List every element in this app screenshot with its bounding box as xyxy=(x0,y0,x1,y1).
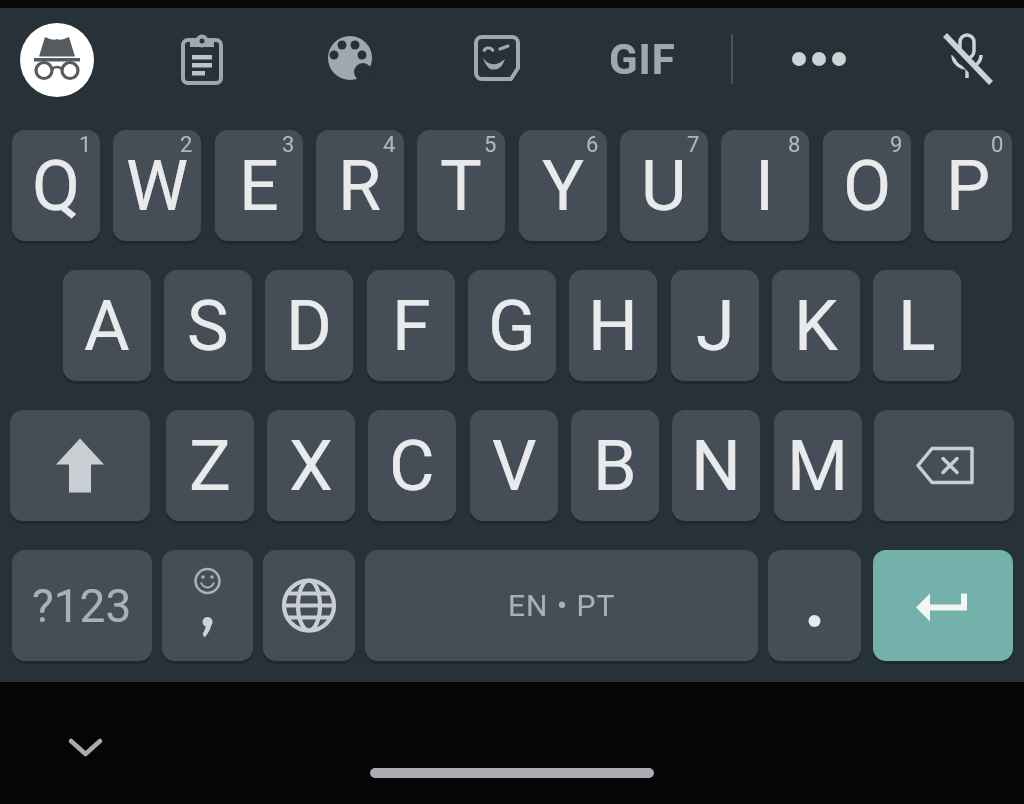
staticText: Q xyxy=(32,145,81,227)
button[interactable]: P xyxy=(924,130,1012,241)
button[interactable] xyxy=(162,550,253,661)
staticText: R xyxy=(338,145,382,227)
staticText: V xyxy=(492,425,537,507)
button[interactable]: N xyxy=(672,410,760,521)
button[interactable] xyxy=(789,49,849,69)
staticText: ?123 xyxy=(32,579,132,633)
button[interactable]: K xyxy=(772,270,860,381)
button[interactable]: A xyxy=(63,270,151,381)
button[interactable]: L xyxy=(873,270,961,381)
button[interactable]: Z xyxy=(166,410,254,521)
staticText: N xyxy=(691,425,741,507)
staticText: EN • PT xyxy=(508,588,616,623)
staticText: O xyxy=(843,145,892,227)
staticText: 3 xyxy=(282,132,295,158)
button[interactable]: B xyxy=(571,410,659,521)
staticText: A xyxy=(84,285,130,367)
button[interactable] xyxy=(176,33,228,85)
button[interactable] xyxy=(324,32,376,84)
staticText: X xyxy=(289,425,333,507)
button[interactable] xyxy=(20,23,94,97)
staticText: 7 xyxy=(687,132,700,158)
button[interactable] xyxy=(874,410,1014,521)
staticText: C xyxy=(389,425,435,507)
staticText: M xyxy=(787,425,849,507)
staticText: 9 xyxy=(890,132,903,158)
button[interactable] xyxy=(471,32,523,84)
button[interactable]: C xyxy=(368,410,456,521)
staticText: S xyxy=(187,285,229,367)
staticText: K xyxy=(794,285,838,367)
button[interactable]: W xyxy=(113,130,201,241)
button[interactable]: R xyxy=(316,130,404,241)
button[interactable] xyxy=(263,550,355,661)
staticText: U xyxy=(641,145,687,227)
button[interactable]: H xyxy=(569,270,657,381)
staticText: I xyxy=(755,145,775,227)
staticText: L xyxy=(898,285,936,367)
button[interactable]: G xyxy=(468,270,556,381)
button[interactable]: Q xyxy=(12,130,100,241)
staticText: GIF xyxy=(609,35,676,84)
staticText: 0 xyxy=(991,132,1004,158)
staticText: T xyxy=(440,145,482,227)
staticText: W xyxy=(126,145,189,227)
button[interactable]: X xyxy=(267,410,355,521)
button[interactable]: M xyxy=(774,410,862,521)
staticText: E xyxy=(239,145,279,227)
staticText: Z xyxy=(189,425,231,507)
button[interactable]: O xyxy=(823,130,911,241)
button[interactable]: EN • PT xyxy=(365,550,758,661)
staticText: H xyxy=(588,285,638,367)
button[interactable]: F xyxy=(367,270,455,381)
staticText: D xyxy=(286,285,332,367)
button[interactable]: T xyxy=(417,130,505,241)
button[interactable]: I xyxy=(721,130,809,241)
button[interactable]: GIF xyxy=(600,33,684,85)
button[interactable] xyxy=(873,550,1013,661)
button[interactable]: V xyxy=(470,410,558,521)
staticText: 4 xyxy=(383,132,396,158)
staticText: J xyxy=(696,285,735,367)
staticText: Y xyxy=(542,145,585,227)
staticText: G xyxy=(488,285,536,367)
staticText: 5 xyxy=(484,132,497,158)
button[interactable]: S xyxy=(164,270,252,381)
staticText: B xyxy=(593,425,637,507)
staticText: 8 xyxy=(788,132,801,158)
button[interactable]: J xyxy=(671,270,759,381)
button[interactable] xyxy=(768,550,861,661)
staticText: F xyxy=(392,285,431,367)
staticText: 2 xyxy=(180,132,193,158)
button[interactable]: U xyxy=(620,130,708,241)
button[interactable] xyxy=(10,410,150,521)
button[interactable]: Y xyxy=(519,130,607,241)
button[interactable]: E xyxy=(215,130,303,241)
staticText: 6 xyxy=(586,132,599,158)
button[interactable]: D xyxy=(265,270,353,381)
button[interactable] xyxy=(936,30,992,86)
button[interactable]: ?123 xyxy=(12,550,152,661)
staticText: 1 xyxy=(79,132,92,158)
staticText: P xyxy=(946,145,991,227)
